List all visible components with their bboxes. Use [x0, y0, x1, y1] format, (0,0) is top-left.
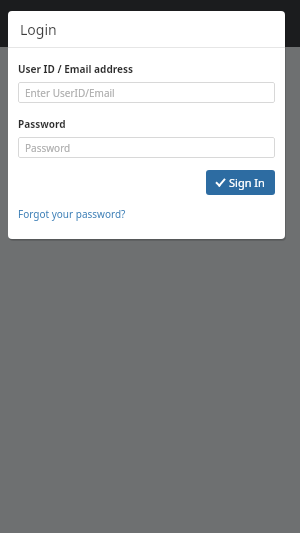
other: Sign In — [216, 178, 225, 187]
staticText: Password — [18, 117, 66, 131]
staticText: Forgot your password? — [18, 207, 126, 221]
staticText: Password — [25, 141, 71, 155]
staticText: Login — [20, 20, 57, 39]
staticText: Enter UserID/Email — [25, 86, 115, 100]
staticText: Sign In — [229, 175, 265, 190]
button[interactable]: Enter UserID/Email — [18, 82, 275, 103]
button[interactable]: Forgot your password? — [18, 205, 126, 223]
button[interactable]: Password — [18, 137, 275, 158]
button[interactable]: Sign In — [206, 170, 275, 195]
staticText: User ID / Email address — [18, 62, 133, 76]
